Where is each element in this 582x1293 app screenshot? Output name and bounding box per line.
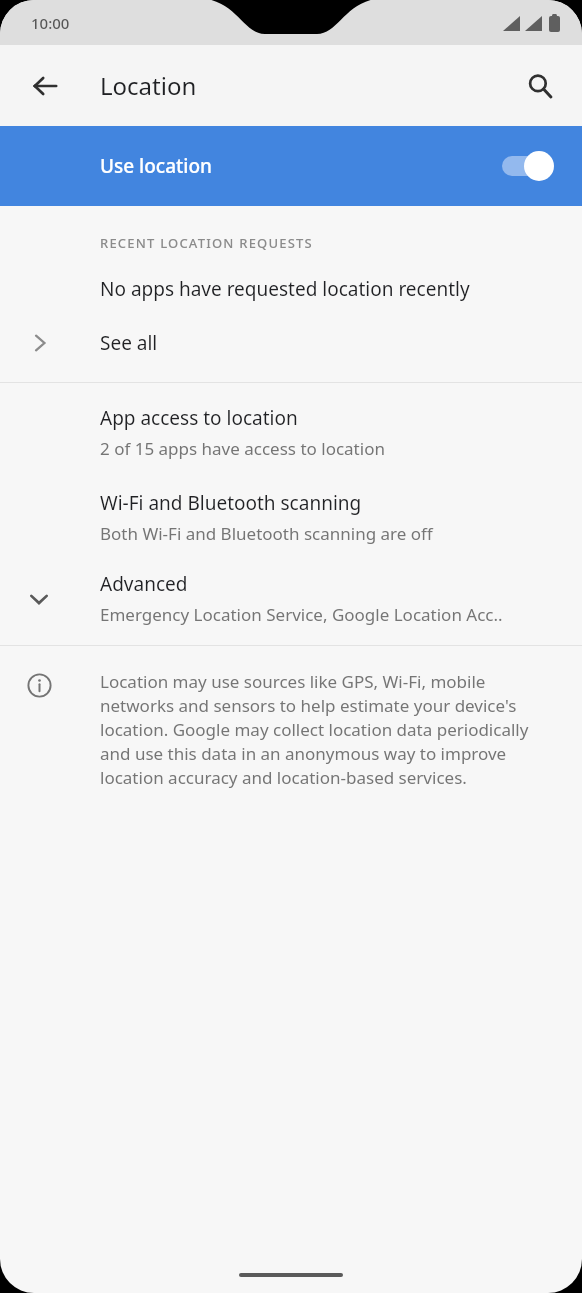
staticText: Wi-Fi and Bluetooth scanning xyxy=(100,490,362,516)
button[interactable]: Back xyxy=(21,62,69,110)
button[interactable]: Wi-Fi and Bluetooth scanning xyxy=(0,490,582,545)
staticText: Emergency Location Service, Google Locat… xyxy=(100,603,503,626)
staticText: RECENT LOCATION REQUESTS xyxy=(100,234,313,252)
staticText: App access to location xyxy=(100,405,298,431)
staticText: Use location xyxy=(100,153,502,179)
staticText: Location may use sources like GPS, Wi-Fi… xyxy=(100,670,552,789)
staticText: Location xyxy=(100,69,197,102)
staticText: 10:00 xyxy=(31,13,70,33)
staticText: 2 of 15 apps have access to location xyxy=(100,437,385,460)
button[interactable]: Advanced xyxy=(0,571,582,626)
button[interactable]: Use location xyxy=(0,126,582,206)
staticText: See all xyxy=(100,330,158,356)
button[interactable]: Search xyxy=(516,62,564,110)
button[interactable]: App access to location xyxy=(0,405,582,460)
staticText: Advanced xyxy=(100,571,188,597)
button[interactable]: See all xyxy=(0,330,582,356)
staticText: No apps have requested location recently xyxy=(100,276,470,302)
button[interactable]: No apps have requested location recently xyxy=(0,276,582,302)
staticText: Both Wi-Fi and Bluetooth scanning are of… xyxy=(100,522,433,545)
